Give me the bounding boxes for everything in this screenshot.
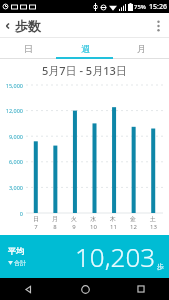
- staticText: 13: [150, 223, 157, 231]
- staticText: 6,000: [8, 158, 23, 165]
- staticText: 0: [19, 210, 23, 217]
- staticText: 9: [72, 223, 76, 231]
- staticText: 日: [33, 215, 39, 223]
- staticText: 金: [130, 215, 136, 223]
- button[interactable]: 週: [57, 38, 113, 59]
- staticText: 木: [110, 215, 116, 223]
- staticText: 火: [71, 215, 77, 223]
- staticText: 日: [24, 43, 33, 54]
- staticText: 平均: [8, 246, 24, 256]
- staticText: 歩: [157, 262, 164, 271]
- staticText: 7: [34, 223, 38, 231]
- button[interactable]: 月: [113, 38, 169, 59]
- staticText: 10: [90, 223, 97, 231]
- staticText: 8: [53, 223, 57, 231]
- staticText: 11: [110, 223, 117, 231]
- staticText: 15,000: [5, 82, 23, 89]
- staticText: 10,203: [75, 239, 156, 274]
- staticText: 9,000: [8, 133, 23, 140]
- button[interactable]: Home: [57, 278, 113, 300]
- button[interactable]: More options: [147, 13, 169, 38]
- button[interactable]: 平均: [0, 235, 169, 278]
- staticText: 月: [52, 215, 58, 223]
- button[interactable]: Back: [0, 278, 57, 300]
- button[interactable]: 日: [0, 38, 57, 59]
- staticText: 3,000: [8, 184, 23, 191]
- staticText: 5月7日 - 5月13日: [42, 63, 127, 78]
- staticText: 合計: [14, 259, 26, 267]
- staticText: 土: [150, 215, 156, 223]
- staticText: 月: [137, 43, 146, 54]
- staticText: 75%: [134, 3, 146, 11]
- staticText: 12: [130, 223, 137, 231]
- staticText: 水: [90, 215, 96, 223]
- staticText: 週: [81, 43, 90, 54]
- button[interactable]: Recents: [113, 278, 169, 300]
- staticText: 12,000: [5, 107, 23, 114]
- button[interactable]: Back: [0, 13, 15, 38]
- staticText: 歩数: [15, 18, 41, 34]
- staticText: 15:26: [149, 2, 167, 12]
